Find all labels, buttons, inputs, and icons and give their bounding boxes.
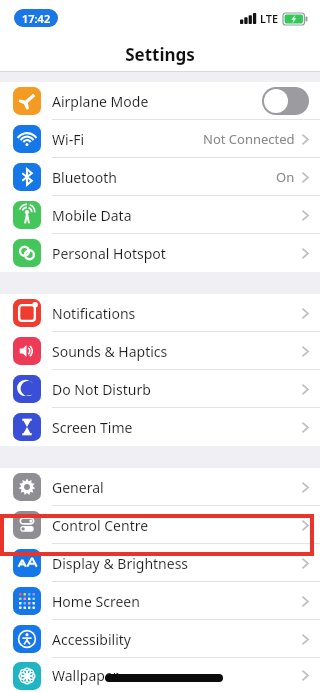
staticText: 17:42: [22, 11, 51, 26]
staticText: Bluetooth: [52, 168, 117, 187]
button[interactable]: Accessibility: [0, 620, 320, 658]
staticText: Wallpaper: [52, 666, 119, 685]
button[interactable]: General: [0, 468, 320, 506]
staticText: Control Centre: [52, 516, 149, 535]
button[interactable]: Wi-Fi: [0, 120, 320, 158]
button[interactable]: Airplane Mode toggle: [262, 87, 309, 115]
staticText: Do Not Disturb: [52, 380, 151, 399]
staticText: Home Screen: [52, 592, 140, 611]
button[interactable]: Personal Hotspot: [0, 234, 320, 272]
staticText: LTE: [260, 11, 279, 26]
staticText: Screen Time: [52, 418, 133, 437]
button[interactable]: Sounds & Haptics: [0, 332, 320, 370]
staticText: Sounds & Haptics: [52, 342, 168, 361]
staticText: General: [52, 478, 104, 497]
button[interactable]: Do Not Disturb: [0, 370, 320, 408]
staticText: On: [276, 168, 295, 186]
button[interactable]: Screen Time: [0, 408, 320, 446]
button[interactable]: Airplane Mode: [0, 82, 320, 120]
staticText: Mobile Data: [52, 206, 132, 225]
staticText: Personal Hotspot: [52, 244, 166, 263]
button[interactable]: Wallpaper: [0, 658, 320, 693]
button[interactable]: Notifications: [0, 294, 320, 332]
staticText: Not Connected: [203, 130, 295, 148]
staticText: Notifications: [52, 304, 136, 323]
staticText: Accessibility: [52, 630, 131, 649]
staticText: Settings: [125, 43, 195, 66]
button[interactable]: Display & Brightness: [0, 544, 320, 582]
button[interactable]: Control Centre: [0, 506, 320, 544]
button[interactable]: Home Screen: [0, 582, 320, 620]
button[interactable]: Bluetooth: [0, 158, 320, 196]
staticText: Airplane Mode: [52, 92, 149, 111]
staticText: Wi-Fi: [52, 130, 85, 149]
button[interactable]: Mobile Data: [0, 196, 320, 234]
staticText: Display & Brightness: [52, 554, 189, 573]
